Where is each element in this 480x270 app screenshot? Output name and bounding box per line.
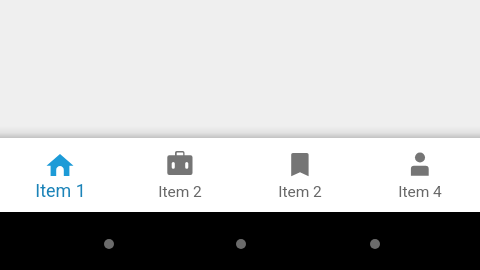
other: Home	[45, 149, 75, 179]
staticText: Item 4	[398, 183, 442, 201]
other: Bookmarks	[285, 149, 315, 179]
staticText: Item 2	[278, 183, 322, 201]
other: Profile	[405, 149, 435, 179]
button[interactable]: Recent apps	[370, 239, 380, 249]
button[interactable]: Work	[120, 138, 240, 212]
staticText: Item 2	[158, 183, 202, 201]
other: Work	[165, 149, 195, 179]
button[interactable]: Profile	[360, 138, 480, 212]
button[interactable]: Home	[0, 138, 120, 212]
button[interactable]: Back	[104, 239, 114, 249]
staticText: Item 1	[35, 180, 86, 201]
button[interactable]: Home	[236, 239, 246, 249]
button[interactable]: Bookmarks	[240, 138, 360, 212]
